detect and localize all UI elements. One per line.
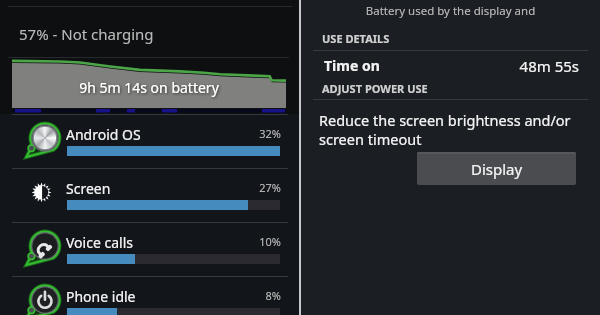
staticText: Time on [324, 56, 380, 75]
other: Android OS [25, 121, 58, 158]
staticText: 10% [240, 234, 281, 249]
staticText: Display [471, 159, 523, 179]
button[interactable]: Voice calls [0, 222, 299, 276]
staticText: 8% [240, 288, 281, 303]
staticText: 32% [240, 126, 281, 141]
staticText: 9h 5m 14s on battery [12, 78, 286, 97]
staticText: 27% [240, 180, 281, 195]
other: Phone idle [25, 283, 58, 315]
staticText: 57% - Not charging [19, 24, 154, 44]
staticText: Reduce the screen brightness and/or scre… [319, 110, 571, 149]
button[interactable]: Phone idle [0, 276, 299, 315]
button[interactable]: Screen [0, 168, 299, 222]
staticText: 48m 55s [451, 56, 579, 76]
staticText: ADJUST POWER USE [322, 81, 428, 96]
button[interactable]: Display [417, 152, 576, 185]
button[interactable]: Android OS [0, 114, 299, 168]
other: Screen [25, 175, 58, 212]
staticText: Voice calls [66, 233, 133, 252]
other: Voice calls [25, 229, 58, 266]
staticText: USE DETAILS [322, 31, 390, 46]
staticText: Android OS [66, 125, 141, 144]
staticText: Battery used by the display and [301, 3, 600, 19]
staticText: Screen [66, 179, 111, 198]
staticText: Phone idle [66, 287, 136, 306]
